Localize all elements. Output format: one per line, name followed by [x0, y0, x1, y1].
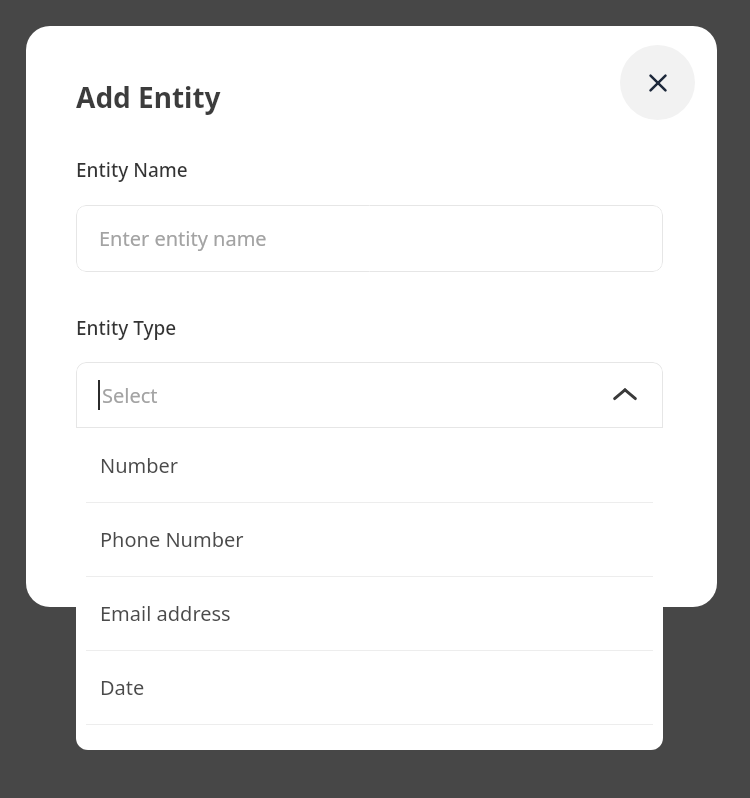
staticText: Number — [100, 452, 179, 479]
button[interactable]: Email address — [76, 577, 663, 650]
staticText: Email address — [100, 600, 231, 627]
button[interactable]: Phone Number — [76, 503, 663, 576]
staticText: Select — [102, 382, 158, 409]
staticText: Enter entity name — [99, 225, 267, 252]
button[interactable]: Enter entity name — [76, 205, 663, 272]
staticText: Date — [100, 674, 145, 701]
button[interactable]: Number — [76, 429, 663, 502]
button[interactable]: Date — [76, 651, 663, 724]
staticText: Phone Number — [100, 526, 244, 553]
staticText: Add Entity — [76, 78, 221, 116]
staticText: Entity Type — [76, 315, 177, 341]
button[interactable]: Close — [620, 45, 695, 120]
staticText: Entity Name — [76, 157, 188, 183]
button[interactable]: Select — [76, 362, 663, 428]
